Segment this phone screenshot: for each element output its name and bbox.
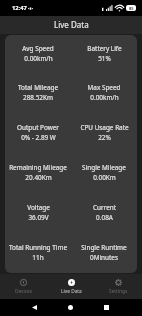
staticText: 0% - 2.89 W: [21, 133, 56, 142]
staticText: 0.08A: [96, 213, 113, 222]
staticText: 0.00km/h: [90, 93, 119, 102]
button[interactable]: Voltage: [5, 193, 71, 233]
button[interactable]: Current: [71, 193, 137, 233]
staticText: 20.40Km: [25, 173, 52, 182]
button[interactable]: CPU Usage Rate: [71, 113, 137, 153]
button[interactable]: Avg Speed: [5, 35, 71, 74]
staticText: Voltage: [27, 203, 50, 212]
button[interactable]: Total Mileage: [5, 74, 71, 113]
staticText: Current: [93, 203, 116, 212]
button[interactable]: Recents: [88, 299, 124, 316]
staticText: Output Power: [17, 123, 59, 132]
staticText: Single Mileage: [82, 163, 126, 172]
button[interactable]: Max Speed: [71, 74, 137, 113]
staticText: Settings: [109, 288, 128, 295]
staticText: Total Running Time: [9, 243, 67, 252]
button[interactable]: Remaining Mileage: [5, 153, 71, 193]
button[interactable]: Settings: [95, 274, 142, 299]
staticText: 0Minutes: [90, 253, 118, 262]
staticText: Avg Speed: [22, 44, 54, 53]
staticText: Max Speed: [87, 83, 121, 92]
staticText: 11h: [32, 253, 44, 262]
staticText: Single Runtime: [81, 243, 127, 252]
staticText: 288.52Km: [23, 93, 53, 102]
staticText: Total Mileage: [18, 83, 58, 92]
staticText: Live Data: [54, 19, 89, 30]
staticText: 51%: [98, 54, 111, 63]
button[interactable]: Single Mileage: [71, 153, 137, 193]
staticText: 0.00Km: [93, 173, 116, 182]
button[interactable]: Home: [52, 299, 88, 316]
staticText: Live Data: [61, 288, 82, 295]
button[interactable]: Output Power: [5, 113, 71, 153]
button[interactable]: Battery Life: [71, 35, 137, 74]
staticText: CPU Usage Rate: [80, 123, 129, 132]
staticText: 36.09V: [28, 213, 49, 222]
staticText: 22%: [98, 133, 111, 142]
button[interactable]: Total Running Time: [5, 233, 71, 273]
staticText: 85: [129, 6, 134, 11]
staticText: Remaining Mileage: [9, 163, 67, 172]
staticText: Devices: [15, 288, 33, 295]
button[interactable]: Single Runtime: [71, 233, 137, 273]
button[interactable]: Live Data: [48, 274, 95, 299]
button[interactable]: Devices: [0, 274, 47, 299]
staticText: 0.00km/h: [24, 54, 53, 63]
staticText: Battery Life: [87, 44, 122, 53]
button[interactable]: Back: [17, 299, 52, 316]
staticText: 12:47: [12, 4, 27, 12]
